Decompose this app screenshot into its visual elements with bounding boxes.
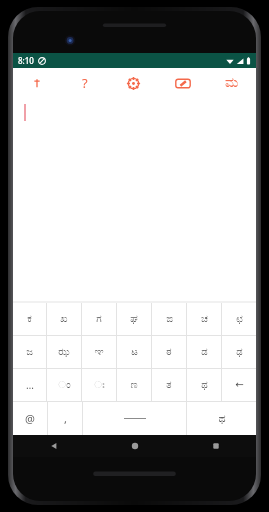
- staticText: ಟ: [131, 347, 138, 357]
- button[interactable]: ಣ: [117, 369, 151, 401]
- button[interactable]: ಚ: [187, 303, 221, 335]
- button[interactable]: Language: [207, 68, 256, 98]
- button[interactable]: Home: [94, 435, 175, 457]
- button[interactable]: ಜ: [13, 336, 46, 368]
- staticText: …: [26, 378, 34, 392]
- button[interactable]: ಡ: [187, 336, 221, 368]
- button[interactable]: ಃ: [82, 369, 116, 401]
- button[interactable]: ಕ: [13, 303, 46, 335]
- staticText: ಮ: [225, 76, 239, 90]
- button[interactable]: ಘ: [117, 303, 151, 335]
- staticText: ಠ: [166, 347, 172, 357]
- button[interactable]: Insert symbol: [13, 68, 61, 98]
- button[interactable]: ಛ: [222, 303, 256, 335]
- button[interactable]: …: [13, 369, 46, 401]
- staticText: ಡ: [201, 347, 208, 357]
- staticText: ತ: [166, 380, 172, 390]
- button[interactable]: ಞ: [82, 336, 116, 368]
- staticText: ಚ: [201, 314, 208, 324]
- button[interactable]: Settings: [109, 68, 158, 98]
- button[interactable]: ಂ: [47, 369, 81, 401]
- staticText: ಥ: [201, 380, 208, 390]
- button[interactable]: ←: [222, 369, 256, 401]
- staticText: ಞ: [94, 347, 104, 357]
- button[interactable]: @: [13, 402, 47, 435]
- button[interactable]: Back: [13, 435, 94, 457]
- staticText: ಝ: [58, 347, 70, 357]
- button[interactable]: ಖ: [47, 303, 81, 335]
- staticText: ಖ: [60, 314, 68, 324]
- button[interactable]: Input method: [158, 68, 207, 98]
- button[interactable]: Recents: [175, 435, 256, 457]
- staticText: ,: [64, 411, 67, 426]
- button[interactable]: ಟ: [117, 336, 151, 368]
- staticText: ಂ: [58, 380, 71, 390]
- button[interactable]: ಠ: [152, 336, 186, 368]
- button[interactable]: ಥ: [187, 402, 256, 435]
- staticText: ಣ: [130, 380, 138, 390]
- button[interactable]: Help: [61, 68, 109, 98]
- staticText: 8:10: [18, 55, 34, 66]
- button[interactable]: ಝ: [47, 336, 81, 368]
- staticText: ಃ: [94, 380, 105, 390]
- button[interactable]: Space: [83, 402, 186, 435]
- staticText: ಢ: [236, 347, 243, 357]
- staticText: ಜ: [26, 347, 33, 357]
- staticText: ?: [82, 74, 88, 92]
- staticText: ಙ: [166, 314, 173, 324]
- staticText: ಥ: [218, 413, 226, 424]
- staticText: @: [25, 411, 35, 426]
- staticText: ಕ: [27, 314, 32, 324]
- button[interactable]: ಗ: [82, 303, 116, 335]
- button[interactable]: ಙ: [152, 303, 186, 335]
- button[interactable]: ಢ: [222, 336, 256, 368]
- staticText: ಘ: [130, 314, 138, 324]
- button[interactable]: ,: [48, 402, 82, 435]
- button[interactable]: ತ: [152, 369, 186, 401]
- staticText: ←: [235, 379, 244, 391]
- staticText: ಗ: [96, 314, 102, 324]
- staticText: ಛ: [236, 314, 243, 324]
- button[interactable]: ಥ: [187, 369, 221, 401]
